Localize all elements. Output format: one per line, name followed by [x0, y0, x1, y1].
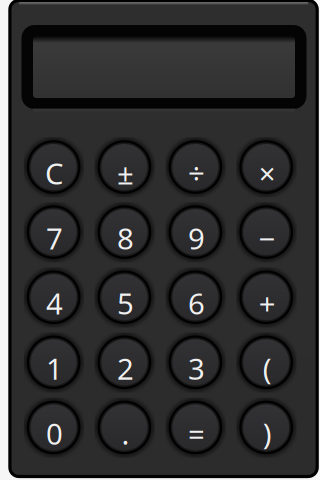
staticText: ): [263, 414, 272, 453]
staticText: +: [259, 284, 276, 323]
button[interactable]: −: [232, 201, 300, 263]
staticText: 1: [46, 349, 63, 388]
button[interactable]: ±: [91, 136, 158, 198]
button[interactable]: 0: [20, 396, 87, 459]
staticText: 3: [188, 349, 205, 388]
staticText: =: [188, 414, 205, 453]
button[interactable]: 1: [20, 331, 87, 393]
button[interactable]: ÷: [162, 136, 229, 198]
staticText: ±: [117, 153, 134, 192]
button[interactable]: ×: [232, 136, 300, 198]
button[interactable]: 6: [162, 266, 229, 328]
staticText: 0: [46, 414, 63, 453]
staticText: 9: [188, 219, 205, 258]
button[interactable]: .: [91, 396, 158, 459]
staticText: ×: [259, 153, 276, 192]
staticText: 6: [188, 284, 205, 323]
staticText: ÷: [188, 153, 205, 192]
button[interactable]: =: [162, 396, 229, 459]
button[interactable]: 4: [20, 266, 87, 328]
button[interactable]: 5: [91, 266, 158, 328]
staticText: −: [259, 219, 276, 258]
button[interactable]: 7: [20, 201, 87, 263]
staticText: 8: [117, 219, 134, 258]
button[interactable]: +: [232, 266, 300, 328]
button[interactable]: 9: [162, 201, 229, 263]
button[interactable]: 8: [91, 201, 158, 263]
button[interactable]: 3: [162, 331, 229, 393]
staticText: 4: [46, 284, 63, 323]
button[interactable]: 2: [91, 331, 158, 393]
staticText: (: [263, 349, 272, 388]
staticText: 7: [46, 219, 63, 258]
button[interactable]: C: [20, 136, 87, 198]
staticText: .: [121, 414, 129, 453]
button[interactable]: (: [232, 331, 300, 393]
staticText: 5: [117, 284, 134, 323]
staticText: 2: [117, 349, 134, 388]
button[interactable]: ): [232, 396, 300, 459]
staticText: C: [45, 153, 64, 192]
